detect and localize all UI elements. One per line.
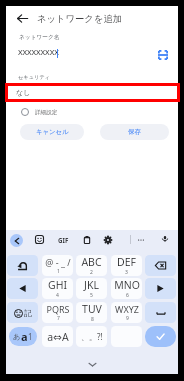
staticText: 8: [91, 316, 94, 323]
button[interactable]: GIF: [58, 234, 69, 246]
button[interactable]: なし: [6, 85, 178, 100]
button[interactable]: aa1: [9, 327, 37, 346]
staticText: セキュリティ: [18, 74, 50, 81]
button[interactable]: @ - _ /: [42, 255, 73, 276]
staticText: a: [21, 329, 28, 344]
button[interactable]: GHI: [42, 278, 73, 299]
button[interactable]: キャンセル: [20, 124, 84, 140]
button[interactable]: undo: [7, 255, 38, 276]
button[interactable]: ABC: [76, 255, 107, 276]
staticText: キャンセル: [36, 128, 69, 136]
staticText: a⇔A: [47, 330, 69, 344]
staticText: DEF: [117, 255, 136, 269]
staticText: 1: [28, 331, 33, 342]
staticText: 7: [57, 315, 60, 322]
staticText: PQRS: [46, 303, 70, 315]
button[interactable]: MNO: [111, 278, 142, 299]
staticText: MNO: [114, 278, 140, 292]
staticText: ABC: [81, 255, 102, 269]
staticText: 記: [24, 308, 32, 318]
staticText: 、。?!: [81, 331, 103, 342]
button[interactable]: Emoji: [32, 232, 47, 247]
staticText: ネットワークを追加: [37, 13, 122, 25]
button[interactable]: check: [145, 326, 176, 347]
button[interactable]: Hide keyboard: [84, 356, 100, 372]
button[interactable]: DEF: [111, 255, 142, 276]
staticText: 保存: [128, 128, 141, 136]
staticText: 3: [125, 269, 128, 276]
staticText: TUV: [82, 302, 102, 316]
button[interactable]: right: [145, 278, 176, 299]
button[interactable]: TUV: [76, 302, 107, 323]
staticText: XXXXXXXXX: [18, 47, 59, 57]
staticText: GHI: [48, 278, 67, 292]
staticText: GIF: [58, 236, 69, 244]
staticText: 9: [126, 315, 129, 322]
button[interactable]: JKL: [76, 278, 107, 299]
button[interactable]: punct: [76, 326, 107, 347]
button[interactable]: PQRS: [42, 302, 73, 323]
button[interactable]: Voice input: [159, 233, 171, 245]
button[interactable]: del: [145, 255, 176, 276]
button[interactable]: a⇔A: [42, 326, 73, 347]
staticText: 詳細設定: [35, 109, 58, 116]
button[interactable]: 保存: [100, 124, 169, 140]
staticText: 2: [90, 269, 93, 276]
staticText: WXYZ: [115, 303, 139, 315]
staticText: 1: [57, 268, 60, 275]
button[interactable]: More options: [135, 234, 147, 246]
staticText: あ: [13, 332, 21, 341]
staticText: なし: [16, 88, 31, 97]
button[interactable]: space: [145, 302, 176, 323]
staticText: JKL: [84, 278, 99, 292]
staticText: 4: [56, 292, 59, 299]
button[interactable]: left: [7, 278, 38, 299]
staticText: 6: [126, 292, 129, 299]
button[interactable]: Scan QR code: [152, 44, 174, 66]
button[interactable]: 詳細設定: [6, 104, 178, 120]
button[interactable]: Back: [11, 7, 33, 29]
button[interactable]: Clipboard: [80, 233, 94, 247]
button[interactable]: emoji: [7, 302, 38, 323]
staticText: 5: [90, 292, 93, 299]
button[interactable]: WXYZ: [111, 302, 142, 323]
staticText: ネットワーク名: [19, 34, 60, 41]
button[interactable]: Settings: [101, 233, 115, 247]
staticText: @ - _ /: [45, 256, 71, 268]
button[interactable]: Expand toolbar: [10, 234, 23, 247]
